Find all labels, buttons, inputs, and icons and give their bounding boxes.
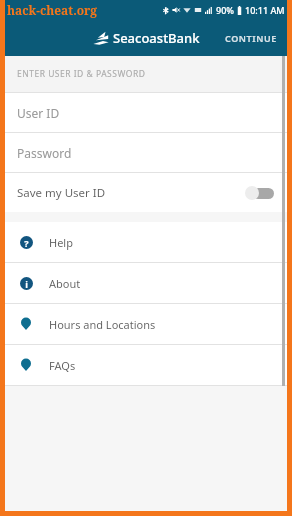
other: About: [20, 277, 33, 290]
other: Location: [21, 358, 31, 372]
staticText: 10:11 AM: [245, 4, 285, 16]
button[interactable]: About: [5, 263, 287, 303]
staticText: FAQs: [49, 358, 76, 373]
button[interactable]: Help: [5, 222, 287, 262]
button[interactable]: Save my User ID: [5, 173, 287, 212]
other: Help: [20, 236, 33, 249]
staticText: ?: [24, 237, 29, 249]
button[interactable]: CONTINUE: [215, 24, 287, 52]
button[interactable]: Location: [5, 304, 287, 344]
staticText: i: [25, 278, 28, 290]
other: Location: [21, 317, 31, 331]
staticText: hack-cheat.org: [7, 2, 98, 18]
staticText: SeacoastBank: [113, 29, 200, 47]
staticText: Save my User ID: [17, 185, 106, 201]
staticText: Password: [17, 145, 72, 161]
staticText: CONTINUE: [225, 32, 277, 44]
staticText: Hours and Locations: [49, 317, 156, 332]
staticText: User ID: [17, 105, 60, 121]
staticText: Help: [49, 235, 73, 250]
button[interactable]: Location: [5, 345, 287, 385]
staticText: ENTER USER ID & PASSWORD: [17, 68, 146, 80]
staticText: 90%: [216, 4, 234, 16]
staticText: About: [49, 276, 81, 291]
